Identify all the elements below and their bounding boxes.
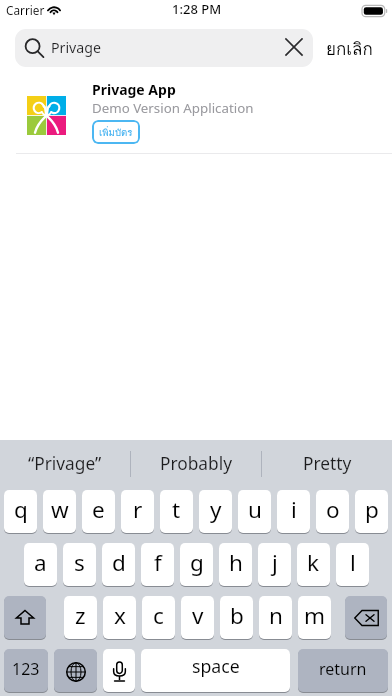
button[interactable]: Privage App [0, 67, 392, 153]
button[interactable]: f [141, 543, 174, 586]
button[interactable]: 123 [4, 649, 48, 692]
button[interactable]: m [298, 596, 331, 639]
button[interactable]: Backspace [345, 596, 387, 639]
staticText: l [350, 547, 356, 578]
button[interactable]: q [4, 490, 37, 533]
staticText: p [365, 494, 379, 525]
staticText: Pretty [303, 452, 352, 476]
staticText: a [34, 547, 47, 578]
staticText: Carrier [6, 2, 45, 18]
button[interactable]: u [238, 490, 271, 533]
staticText: r [133, 494, 143, 525]
staticText: y [210, 494, 222, 525]
button[interactable]: c [142, 596, 175, 639]
button[interactable]: n [259, 596, 292, 639]
button[interactable]: b [220, 596, 253, 639]
staticText: o [326, 494, 340, 525]
staticText: “Privage” [28, 452, 102, 476]
staticText: c [153, 600, 164, 631]
staticText: k [307, 547, 320, 578]
staticText: h [229, 547, 243, 578]
button[interactable]: h [219, 543, 252, 586]
button[interactable]: e [82, 490, 115, 533]
staticText: g [190, 547, 204, 578]
button[interactable]: x [103, 596, 136, 639]
staticText: Probably [160, 452, 232, 476]
button[interactable]: l [336, 543, 369, 586]
staticText: u [248, 494, 262, 525]
staticText: f [154, 547, 162, 578]
button[interactable]: v [181, 596, 214, 639]
staticText: e [92, 494, 105, 525]
staticText: t [172, 494, 181, 525]
staticText: q [14, 494, 28, 525]
staticText: ยกเลิก [326, 35, 373, 62]
staticText: d [112, 547, 126, 578]
button[interactable]: Dictate [103, 649, 135, 692]
staticText: 1:28 PM [172, 0, 222, 18]
button[interactable]: o [316, 490, 349, 533]
button[interactable]: g [180, 543, 213, 586]
button[interactable]: j [258, 543, 291, 586]
staticText: w [51, 494, 69, 525]
staticText: return [319, 658, 367, 680]
button[interactable]: s [63, 543, 96, 586]
button[interactable]: k [297, 543, 330, 586]
staticText: Demo Version Application [92, 99, 254, 117]
staticText: เพิ่มบัตร [99, 125, 133, 140]
button[interactable]: Clear search [275, 29, 313, 67]
staticText: j [272, 547, 278, 578]
button[interactable]: เพิ่มบัตร [92, 120, 140, 144]
staticText: z [75, 600, 86, 631]
staticText: Privage [51, 38, 101, 57]
button[interactable]: d [102, 543, 135, 586]
staticText: x [114, 600, 126, 631]
staticText: b [230, 600, 244, 631]
button[interactable]: Change keyboard [54, 649, 97, 692]
button[interactable]: ยกเลิก [326, 29, 373, 67]
staticText: 123 [12, 658, 40, 680]
button[interactable]: “Privage” [0, 440, 130, 488]
button[interactable]: a [24, 543, 57, 586]
button[interactable]: Pretty [262, 440, 392, 488]
button[interactable]: r [121, 490, 154, 533]
staticText: space [192, 654, 240, 678]
button[interactable]: Probably [131, 440, 261, 488]
button[interactable]: t [160, 490, 193, 533]
button[interactable]: y [199, 490, 232, 533]
button[interactable]: Shift [4, 596, 46, 639]
staticText: i [291, 494, 297, 525]
button[interactable]: return [298, 649, 388, 692]
button[interactable]: w [43, 490, 76, 533]
button[interactable]: space [141, 649, 290, 692]
button[interactable]: z [64, 596, 97, 639]
button[interactable]: Privage [15, 29, 313, 67]
button[interactable]: i [277, 490, 310, 533]
staticText: m [304, 600, 326, 631]
staticText: v [192, 600, 204, 631]
staticText: n [269, 600, 283, 631]
staticText: s [74, 547, 85, 578]
staticText: Privage App [92, 80, 176, 99]
button[interactable]: p [355, 490, 388, 533]
